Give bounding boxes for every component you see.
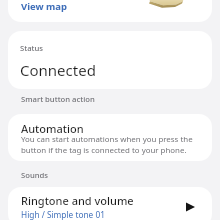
button[interactable]: Ringtone and volume xyxy=(8,187,212,220)
staticText: Ringtone and volume xyxy=(21,193,134,208)
staticText: Status xyxy=(20,43,44,53)
staticText: View map xyxy=(21,0,68,13)
staticText: Sounds xyxy=(21,170,49,180)
staticText: Smart button action xyxy=(21,94,95,104)
staticText: High / Simple tone 01 xyxy=(21,209,105,220)
button[interactable]: View map xyxy=(8,0,212,22)
button[interactable]: Status xyxy=(8,31,212,89)
staticText: Connected xyxy=(20,60,96,80)
button[interactable]: Automation xyxy=(8,114,212,161)
staticText: You can start automations when you press… xyxy=(21,134,205,155)
staticText: Automation xyxy=(21,121,84,136)
button[interactable]: Play ringtone xyxy=(176,193,204,220)
